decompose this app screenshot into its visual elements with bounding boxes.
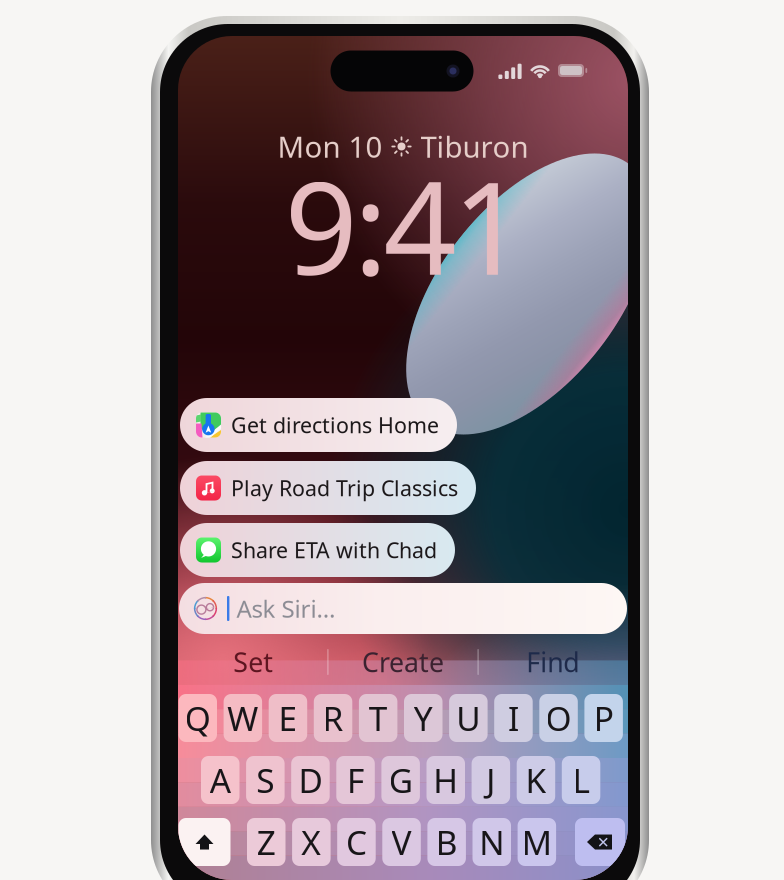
button[interactable]: X — [292, 818, 331, 866]
button[interactable]: R — [314, 694, 352, 742]
button[interactable]: P — [584, 694, 623, 742]
staticText: Get directions Home — [231, 411, 439, 439]
button[interactable]: S — [246, 756, 285, 804]
button[interactable]: Create — [328, 642, 477, 682]
button[interactable]: V — [382, 818, 421, 866]
staticText: U — [456, 696, 480, 740]
staticText: H — [433, 758, 458, 802]
staticText: L — [572, 758, 589, 802]
button[interactable]: Share ETA with Chad — [180, 523, 455, 577]
button[interactable]: Set — [179, 642, 327, 682]
button[interactable]: N — [472, 818, 511, 866]
button[interactable]: A — [201, 756, 239, 804]
button[interactable]: Find — [479, 642, 627, 682]
staticText: W — [227, 696, 258, 740]
staticText: × — [597, 828, 608, 855]
staticText: K — [525, 758, 546, 802]
staticText: S — [256, 758, 274, 802]
button[interactable]: H — [426, 756, 465, 804]
staticText: Create — [362, 644, 444, 680]
staticText: Mon 10 — [277, 127, 382, 166]
staticText: X — [301, 820, 321, 864]
button[interactable]: Get directions Home — [180, 398, 457, 452]
staticText: J — [486, 758, 495, 802]
button[interactable]: B — [427, 818, 466, 866]
staticText: D — [298, 758, 322, 802]
staticText: 9:41 — [284, 140, 525, 310]
staticText: V — [392, 820, 412, 864]
button[interactable] — [575, 818, 625, 866]
staticText: A — [210, 758, 231, 802]
staticText: C — [346, 820, 367, 864]
button[interactable]: C — [337, 818, 376, 866]
button[interactable]: O — [539, 694, 578, 742]
staticText: B — [436, 820, 458, 864]
button[interactable]: G — [381, 756, 420, 804]
staticText: Z — [257, 820, 276, 864]
staticText: Share ETA with Chad — [231, 536, 437, 564]
staticText: E — [278, 696, 297, 740]
staticText: M — [522, 820, 552, 864]
staticText: Set — [233, 644, 273, 680]
staticText: Tiburon — [420, 127, 528, 166]
button[interactable]: E — [269, 694, 307, 742]
staticText: Ask Siri… — [236, 593, 335, 624]
staticText: Find — [526, 644, 579, 680]
button[interactable]: T — [359, 694, 397, 742]
staticText: F — [347, 758, 364, 802]
button[interactable]: L — [562, 756, 600, 804]
button[interactable]: I — [494, 694, 533, 742]
staticText: O — [545, 696, 571, 740]
staticText: Q — [185, 696, 211, 740]
staticText: R — [323, 696, 344, 740]
staticText: Y — [414, 696, 433, 740]
button[interactable]: J — [472, 756, 510, 804]
staticText: Play Road Trip Classics — [231, 474, 458, 502]
button[interactable] — [178, 818, 230, 866]
button[interactable]: M — [518, 818, 556, 866]
button[interactable]: Y — [404, 694, 442, 742]
button[interactable]: Z — [247, 818, 285, 866]
staticText: T — [369, 696, 388, 740]
staticText: P — [594, 696, 614, 740]
button[interactable]: D — [291, 756, 330, 804]
button[interactable]: K — [517, 756, 555, 804]
button[interactable]: Q — [178, 694, 217, 742]
button[interactable]: F — [336, 756, 375, 804]
button[interactable]: Ask Siri… — [179, 583, 627, 634]
staticText: N — [479, 820, 504, 864]
button[interactable]: Play Road Trip Classics — [180, 461, 476, 515]
button[interactable]: W — [224, 694, 262, 742]
staticText: G — [389, 758, 413, 802]
button[interactable]: U — [449, 694, 488, 742]
staticText: I — [508, 696, 519, 740]
